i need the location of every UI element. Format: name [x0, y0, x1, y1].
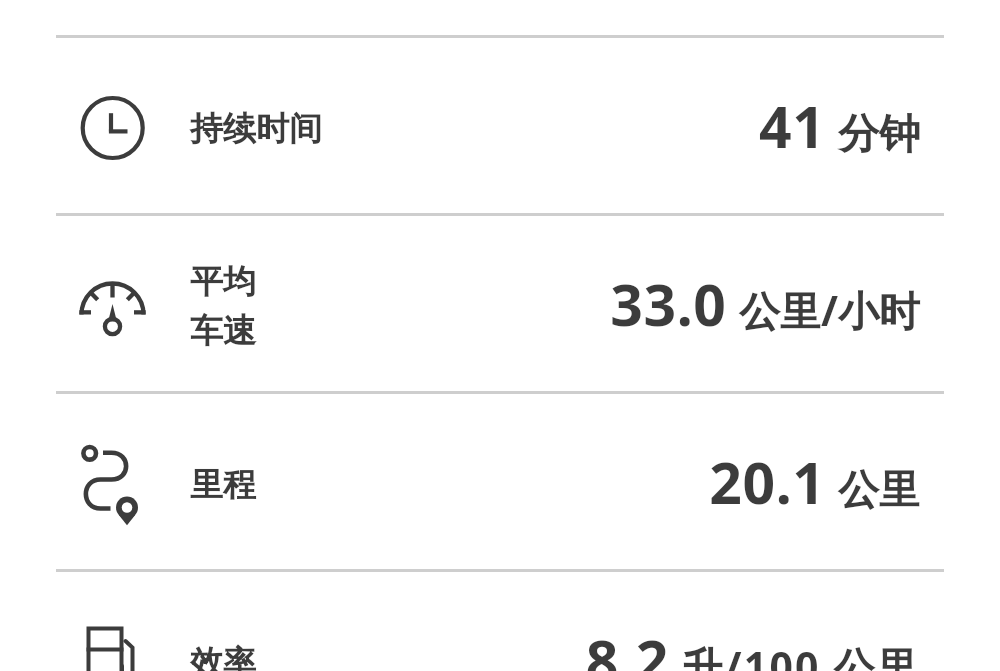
staticText: 持续时间: [190, 108, 322, 150]
staticText: 8.2 升/100 公里: [585, 621, 920, 671]
staticText: 41 分钟: [759, 87, 920, 165]
other: Distance travelled: [81, 442, 143, 526]
staticText: 20.1 公里: [709, 443, 920, 521]
staticText: 里程: [190, 464, 256, 506]
button[interactable]: Average speed: [0, 216, 1000, 391]
staticText: 平均 车速: [190, 261, 256, 352]
staticText: 33.0 公里/小时: [610, 265, 920, 343]
button[interactable]: Distance travelled: [0, 394, 1000, 569]
other: Duration: [79, 94, 145, 162]
other: Average speed: [79, 273, 145, 339]
other: Fuel efficiency: [79, 628, 145, 671]
button[interactable]: Fuel efficiency: [0, 572, 1000, 671]
staticText: 效率: [190, 642, 256, 671]
button[interactable]: Duration: [0, 38, 1000, 213]
